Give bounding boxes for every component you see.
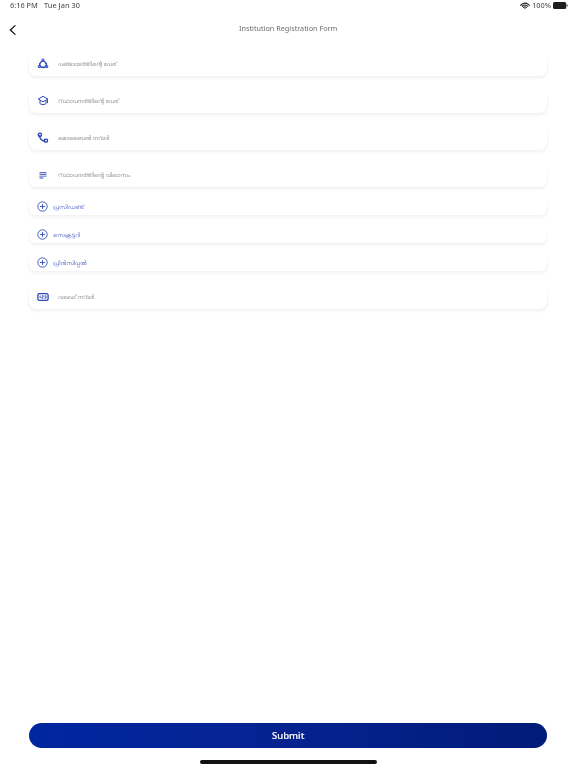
button[interactable]: സ്ഥാപനത്തിൻ്റെ വിലാസം [29, 162, 547, 187]
button[interactable]: പ്രസിഡണ്ട് [29, 198, 547, 215]
button[interactable]: സ്ഥാപനത്തിന്റെ പേര് [29, 88, 547, 113]
staticText: വഖഫ് നമ്പർ [58, 293, 95, 301]
staticText: പ്രിൻസിപ്പൽ [53, 260, 87, 266]
staticText: സ്ഥാപനത്തിന്റെ പേര് [58, 97, 119, 105]
staticText: പഞ്ചായത്തിന്റെ പേര് [58, 60, 117, 68]
staticText: 100% [532, 0, 551, 10]
staticText: പ്രസിഡണ്ട് [53, 204, 84, 210]
staticText: Institution Registration Form [239, 23, 338, 33]
staticText: സ്ഥാപനത്തിൻ്റെ വിലാസം [58, 171, 131, 179]
staticText: മൊബൈൽ നമ്പർ [58, 134, 110, 142]
staticText: സെക്രട്ടറി [53, 232, 80, 238]
staticText: Submit [272, 729, 305, 742]
button[interactable]: Submit [29, 723, 547, 748]
staticText: Tue Jan 30 [44, 0, 80, 10]
button[interactable]: പഞ്ചായത്തിന്റെ പേര് [29, 51, 547, 76]
staticText: 6:16 PM [10, 0, 38, 10]
button[interactable]: സെക്രട്ടറി [29, 226, 547, 243]
button[interactable]: Back [1, 19, 23, 41]
button[interactable]: പ്രിൻസിപ്പൽ [29, 254, 547, 271]
button[interactable]: വഖഫ് നമ്പർ [29, 284, 547, 309]
button[interactable]: മൊബൈൽ നമ്പർ [29, 125, 547, 150]
